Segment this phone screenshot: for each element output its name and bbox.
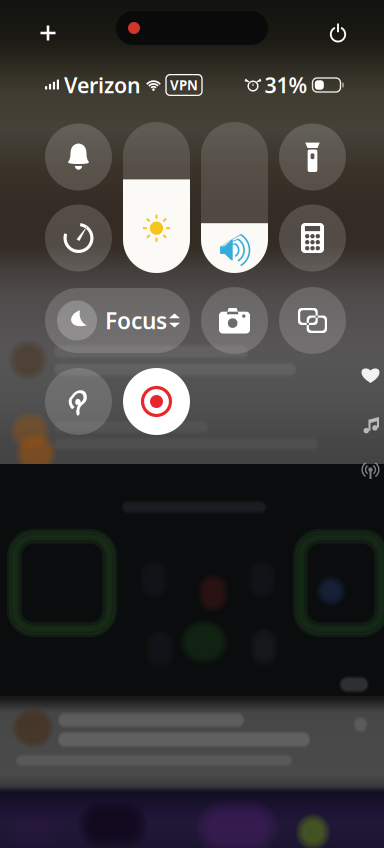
button[interactable]: Screen Recording — [123, 368, 190, 435]
button[interactable]: Hearing — [45, 368, 112, 435]
button[interactable]: Brightness — [123, 122, 190, 273]
button[interactable]: Volume — [201, 122, 268, 273]
staticText: Focus — [105, 305, 167, 335]
button[interactable]: Flashlight — [279, 123, 346, 190]
button[interactable]: Camera — [201, 287, 268, 354]
staticText: Verizon — [64, 71, 141, 99]
button[interactable]: Add — [28, 13, 68, 53]
button[interactable]: Screen Mirroring — [279, 287, 346, 354]
button[interactable]: Power — [318, 13, 358, 53]
staticText: VPN — [170, 76, 198, 94]
button[interactable]: Silent mode — [45, 123, 112, 190]
button[interactable]: Calculator — [279, 204, 346, 271]
button[interactable]: Timer — [45, 204, 112, 271]
button[interactable]: Focus — [45, 288, 190, 353]
staticText: 31% — [264, 71, 307, 99]
